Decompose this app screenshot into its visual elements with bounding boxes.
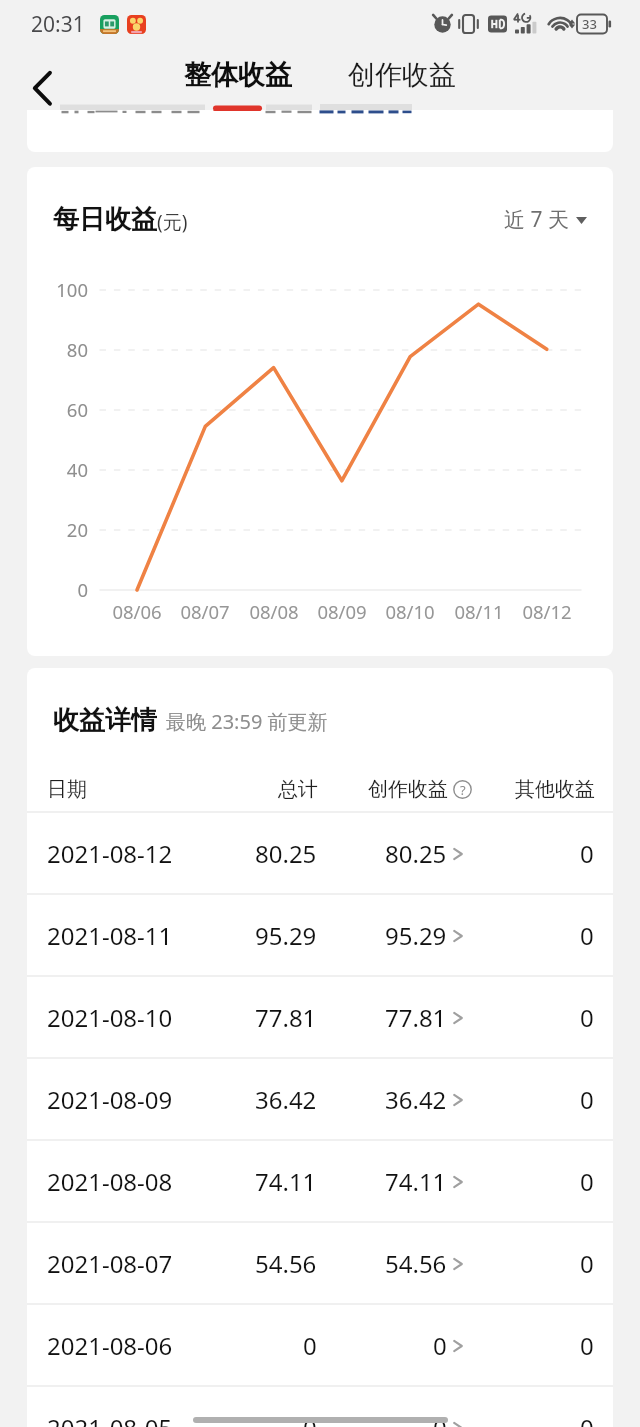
staticText: 08/12 bbox=[522, 599, 572, 624]
staticText: 0 bbox=[433, 1329, 447, 1362]
staticText: 80.25 bbox=[385, 837, 447, 870]
button[interactable]: 2021-08-09 bbox=[27, 1059, 613, 1139]
staticText: 0 bbox=[77, 577, 88, 602]
staticText: 0 bbox=[433, 1411, 447, 1427]
staticText: 74.11 bbox=[385, 1165, 447, 1198]
staticText: 0 bbox=[580, 1083, 594, 1116]
staticText: 其他收益 bbox=[515, 777, 595, 802]
staticText: 08/11 bbox=[454, 599, 504, 624]
staticText: 08/10 bbox=[385, 599, 435, 624]
staticText: 36.42 bbox=[385, 1083, 447, 1116]
button[interactable]: Back bbox=[12, 57, 68, 113]
staticText: (元) bbox=[157, 209, 188, 235]
button[interactable]: 2021-08-12 bbox=[27, 813, 613, 893]
staticText: 2021-08-07 bbox=[47, 1247, 173, 1280]
staticText: 0 bbox=[580, 1165, 594, 1198]
staticText: 100 bbox=[56, 277, 88, 302]
staticText: 33 bbox=[582, 15, 597, 33]
staticText: 创作收益 bbox=[368, 777, 448, 802]
staticText: 2021-08-08 bbox=[47, 1165, 173, 1198]
button[interactable]: 2021-08-08 bbox=[27, 1141, 613, 1221]
staticText: 每日收益 bbox=[53, 203, 157, 236]
staticText: 20 bbox=[66, 517, 88, 542]
staticText: 收益详情 bbox=[53, 704, 157, 737]
staticText: 0 bbox=[580, 1001, 594, 1034]
button[interactable]: 2021-08-05 bbox=[27, 1387, 613, 1427]
button[interactable]: 整体收益 bbox=[174, 52, 302, 98]
staticText: 0 bbox=[303, 1329, 317, 1362]
staticText: 40 bbox=[66, 457, 88, 482]
staticText: 2021-08-05 bbox=[47, 1411, 173, 1427]
button[interactable]: 2021-08-10 bbox=[27, 977, 613, 1057]
staticText: 77.81 bbox=[385, 1001, 447, 1034]
staticText: 近 7 天 bbox=[504, 205, 569, 234]
staticText: 0 bbox=[580, 837, 594, 870]
button[interactable]: 创作收益 bbox=[338, 52, 466, 98]
staticText: 54.56 bbox=[385, 1247, 447, 1280]
staticText: 08/07 bbox=[180, 599, 230, 624]
staticText: 总计 bbox=[278, 777, 318, 802]
staticText: 整体收益 bbox=[184, 58, 292, 92]
staticText: 2021-08-10 bbox=[47, 1001, 173, 1034]
button[interactable]: 2021-08-06 bbox=[27, 1305, 613, 1385]
staticText: 0 bbox=[580, 1247, 594, 1280]
staticText: 0 bbox=[580, 1411, 594, 1427]
staticText: 08/06 bbox=[112, 599, 162, 624]
staticText: 60 bbox=[66, 397, 88, 422]
staticText: 54.56 bbox=[255, 1247, 317, 1280]
staticText: 2021-08-12 bbox=[47, 837, 173, 870]
staticText: 日期 bbox=[47, 777, 87, 802]
button[interactable]: 2021-08-11 bbox=[27, 895, 613, 975]
staticText: 最晚 23:59 前更新 bbox=[166, 708, 328, 735]
staticText: 80.25 bbox=[255, 837, 317, 870]
staticText: 20:31 bbox=[31, 10, 85, 39]
staticText: 80 bbox=[66, 337, 88, 362]
button[interactable]: 2021-08-07 bbox=[27, 1223, 613, 1303]
staticText: 2021-08-11 bbox=[47, 919, 173, 952]
staticText: 2021-08-06 bbox=[47, 1329, 173, 1362]
staticText: ? bbox=[460, 781, 466, 799]
staticText: 08/08 bbox=[249, 599, 299, 624]
staticText: 95.29 bbox=[385, 919, 447, 952]
staticText: 2021-08-09 bbox=[47, 1083, 173, 1116]
staticText: 0 bbox=[303, 1411, 317, 1427]
staticText: 创作收益 bbox=[348, 58, 456, 92]
button[interactable]: 近 7 天 bbox=[504, 207, 587, 236]
staticText: 0 bbox=[580, 919, 594, 952]
staticText: 77.81 bbox=[255, 1001, 317, 1034]
staticText: 74.11 bbox=[255, 1165, 317, 1198]
staticText: 0 bbox=[580, 1329, 594, 1362]
staticText: 08/09 bbox=[317, 599, 367, 624]
staticText: 95.29 bbox=[255, 919, 317, 952]
staticText: 36.42 bbox=[255, 1083, 317, 1116]
